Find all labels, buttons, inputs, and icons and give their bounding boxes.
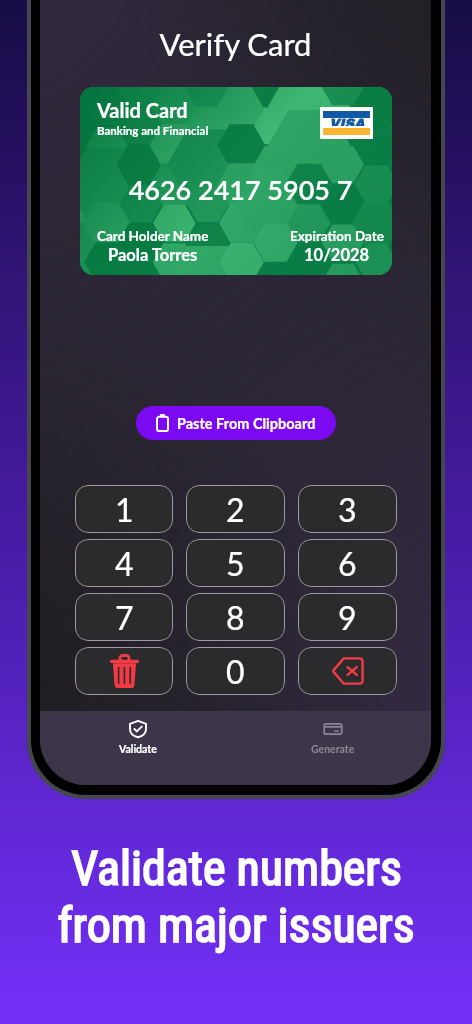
staticText: 4626 2417 5905 7: [97, 173, 384, 205]
staticText: 9: [338, 598, 357, 636]
button[interactable]: 5: [186, 539, 285, 587]
button[interactable]: 7: [75, 593, 173, 641]
button[interactable]: Generate: [235, 711, 431, 785]
button[interactable]: 8: [186, 593, 285, 641]
button[interactable]: Valid Card: [80, 87, 392, 275]
staticText: Banking and Financial: [97, 124, 209, 138]
button[interactable]: Paste From Clipboard: [136, 406, 336, 440]
button[interactable]: 9: [298, 593, 397, 641]
staticText: Valid Card: [97, 98, 188, 122]
staticText: Paola Torres: [108, 245, 198, 265]
staticText: Paste From Clipboard: [177, 415, 316, 432]
staticText: 7: [115, 598, 134, 636]
staticText: Generate: [311, 743, 355, 756]
button[interactable]: Clear all: [75, 647, 173, 695]
staticText: 8: [226, 598, 245, 636]
staticText: 3: [338, 490, 357, 528]
staticText: 2: [226, 490, 245, 528]
button[interactable]: 1: [75, 485, 173, 533]
staticText: Validate: [119, 743, 157, 756]
staticText: 0: [226, 652, 245, 690]
button[interactable]: 2: [186, 485, 285, 533]
staticText: 6: [338, 544, 357, 582]
staticText: 4: [115, 544, 134, 582]
staticText: Card Holder Name: [97, 228, 209, 244]
staticText: VISA: [329, 116, 365, 126]
button[interactable]: 6: [298, 539, 397, 587]
button[interactable]: Backspace: [298, 647, 397, 695]
button[interactable]: 4: [75, 539, 173, 587]
staticText: Expiration Date: [290, 228, 384, 244]
button[interactable]: Validate: [40, 711, 235, 785]
staticText: from major issuers: [57, 897, 415, 953]
staticText: 10/2028: [304, 245, 370, 265]
staticText: Validate numbers: [71, 840, 402, 896]
button[interactable]: 3: [298, 485, 397, 533]
staticText: 1: [115, 490, 134, 528]
staticText: Verify Card: [40, 25, 431, 62]
staticText: 5: [226, 544, 245, 582]
button[interactable]: 0: [186, 647, 285, 695]
